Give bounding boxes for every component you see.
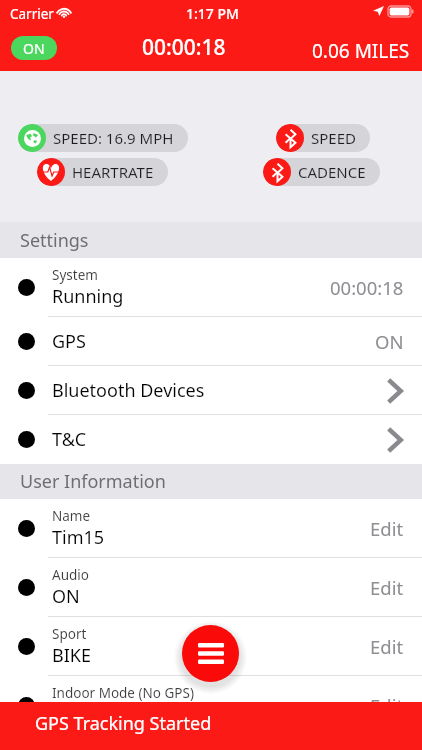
staticText: ON [375, 329, 404, 354]
staticText: OFF [52, 702, 85, 727]
staticText: 0.06 MILES [312, 38, 410, 64]
button[interactable]: Indoor Mode (No GPS) [0, 676, 422, 735]
button[interactable]: Audio [0, 558, 422, 617]
staticText: GPS [52, 329, 86, 354]
staticText: 00:00:18 [330, 275, 404, 300]
button[interactable]: Sport [0, 617, 422, 676]
staticText: Edit [370, 693, 404, 718]
button[interactable]: ON [11, 36, 57, 60]
staticText: Carrier [10, 5, 54, 23]
staticText: Running [52, 284, 124, 309]
button[interactable]: T&C [0, 415, 422, 464]
button[interactable]: Name [0, 499, 422, 558]
staticText: SPEED: 16.9 MPH [53, 128, 174, 148]
other: Open [386, 428, 404, 452]
staticText: System [52, 266, 98, 284]
other: Open [386, 379, 404, 403]
button[interactable]: SPEED: 16.9 MPH [18, 124, 174, 152]
staticText: Edit [370, 634, 404, 659]
staticText: 00:00:18 [142, 33, 226, 62]
button[interactable]: Bluetooth Devices [0, 366, 422, 415]
staticText: SPEED [311, 128, 356, 148]
staticText: Audio [52, 566, 89, 584]
button[interactable]: GPS [0, 317, 422, 366]
staticText: Edit [370, 516, 404, 541]
button[interactable]: System [0, 258, 422, 317]
staticText: Sport [52, 625, 87, 643]
button[interactable]: CADENCE [263, 158, 366, 186]
staticText: BIKE [52, 643, 91, 668]
button[interactable]: HEARTRATE [37, 158, 154, 186]
staticText: Tim15 [52, 525, 105, 550]
staticText: Indoor Mode (No GPS) [52, 684, 194, 702]
staticText: 1:17 PM [186, 4, 239, 23]
staticText: Edit [370, 575, 404, 600]
staticText: Name [52, 507, 91, 525]
staticText: ON [52, 584, 80, 609]
staticText: Settings [20, 228, 89, 253]
staticText: User Information [20, 469, 166, 494]
staticText: ON [23, 39, 45, 58]
staticText: CADENCE [298, 162, 366, 182]
staticText: T&C [52, 427, 87, 452]
staticText: Bluetooth Devices [52, 378, 205, 403]
button[interactable]: SPEED [276, 124, 356, 152]
button[interactable]: Menu [182, 625, 239, 682]
staticText: HEARTRATE [72, 162, 154, 182]
staticText: GPS Tracking Started [35, 711, 212, 736]
